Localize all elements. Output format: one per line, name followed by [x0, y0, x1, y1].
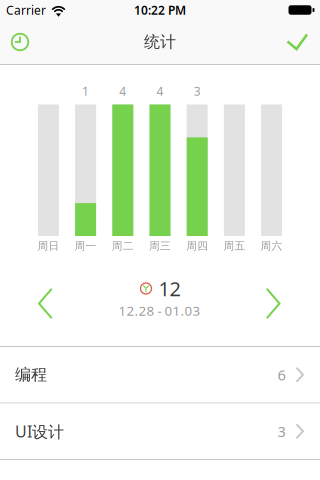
staticText: 1	[82, 83, 89, 99]
staticText: 编程	[15, 365, 47, 385]
button[interactable]: 上一周	[24, 274, 67, 333]
staticText: 周日	[37, 239, 59, 252]
staticText: 周四	[186, 239, 208, 252]
staticText: 12	[158, 275, 180, 302]
staticText: 4	[119, 83, 126, 99]
staticText: 周二	[112, 239, 134, 252]
staticText: 周一	[75, 239, 97, 252]
staticText: 统计	[144, 32, 176, 52]
staticText: Carrier	[6, 2, 46, 18]
staticText: UI设计	[15, 421, 64, 442]
staticText: 3	[194, 83, 201, 99]
staticText: 10:22 PM	[134, 2, 186, 18]
button[interactable]: 下一周	[252, 274, 294, 333]
staticText: 6	[277, 365, 285, 384]
button[interactable]: 完成	[273, 20, 320, 64]
staticText: 3	[277, 421, 285, 441]
staticText: 周三	[149, 239, 171, 252]
button[interactable]: 计时	[0, 20, 44, 64]
staticText: 12.28 - 01.03	[118, 302, 200, 319]
staticText: 4	[156, 83, 163, 99]
button[interactable]: 编程	[0, 347, 320, 402]
button[interactable]: UI设计	[0, 403, 320, 459]
staticText: 周六	[261, 239, 283, 252]
staticText: 周五	[223, 239, 245, 252]
